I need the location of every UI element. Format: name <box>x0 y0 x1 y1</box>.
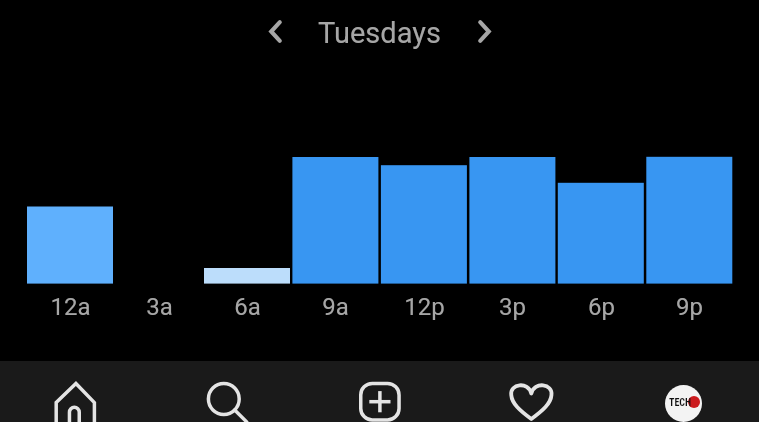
staticText: 6a <box>234 293 261 321</box>
button[interactable]: Next day <box>460 9 508 57</box>
staticText: Tuesdays <box>318 16 441 50</box>
button[interactable]: Home <box>38 361 114 422</box>
staticText: TECH <box>669 397 692 409</box>
button[interactable]: Profile <box>645 361 721 422</box>
button[interactable]: Activity <box>493 361 569 422</box>
button[interactable]: Search <box>186 361 262 422</box>
staticText: 9p <box>676 293 703 321</box>
staticText: 3p <box>499 293 526 321</box>
staticText: 3a <box>146 293 173 321</box>
button[interactable]: Create <box>342 361 418 422</box>
staticText: 6p <box>588 293 615 321</box>
staticText: 12a <box>50 293 91 321</box>
staticText: 12p <box>404 293 445 321</box>
button[interactable]: Previous day <box>251 9 299 57</box>
staticText: 9a <box>322 293 349 321</box>
